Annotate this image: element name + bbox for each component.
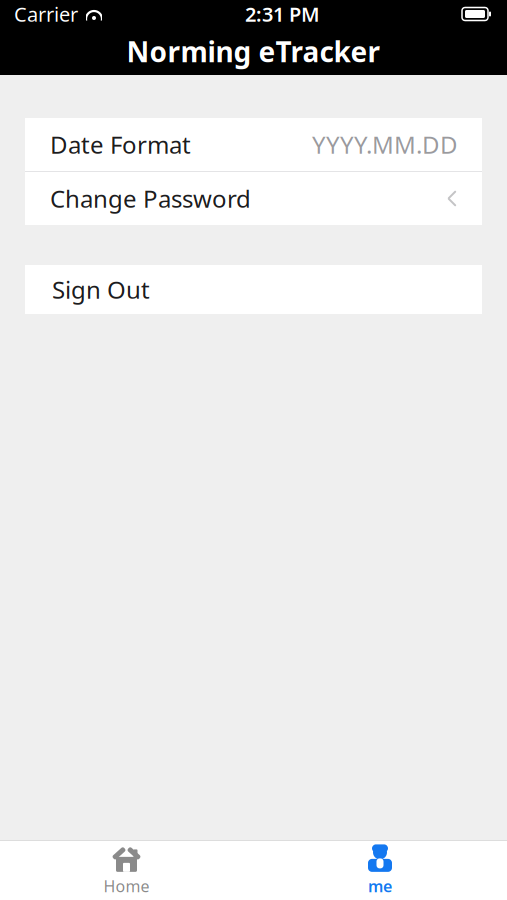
button[interactable]: Change Password (25, 172, 482, 225)
button[interactable]: Sign Out (25, 265, 482, 314)
staticText: Change Password (50, 183, 251, 214)
staticText: Sign Out (52, 274, 150, 305)
button[interactable]: Home (0, 841, 253, 900)
staticText: Carrier (14, 1, 78, 27)
staticText: YYYY.MM.DD (312, 129, 458, 160)
staticText: me (368, 875, 392, 897)
staticText: Date Format (50, 129, 191, 160)
button[interactable]: me (253, 841, 507, 900)
staticText: 2:31 PM (245, 1, 320, 27)
staticText: Home (103, 875, 149, 897)
staticText: Norming eTracker (126, 33, 380, 70)
button[interactable]: Date Format (25, 118, 482, 171)
